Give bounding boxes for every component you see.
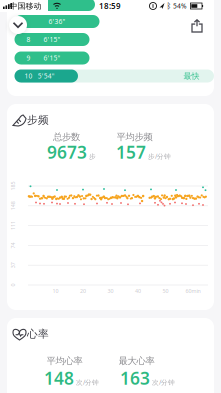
staticText: 54% (173, 2, 187, 10)
staticText: 心率 (27, 327, 49, 340)
staticText: ᛒ (166, 2, 171, 10)
staticText: 9673 (47, 140, 87, 163)
staticText: 74 (10, 242, 16, 249)
staticText: 次/分钟 (76, 378, 99, 387)
staticText: 20 (80, 287, 86, 295)
staticText: 40 (135, 287, 141, 295)
staticText: 148 (44, 366, 74, 389)
staticText: 9 (26, 54, 30, 62)
staticText: 30 (107, 287, 113, 295)
staticText: 148 (8, 202, 17, 209)
staticText: 50 (162, 287, 168, 295)
staticText: 6'15" (43, 54, 60, 62)
button[interactable]: 8 (14, 33, 89, 46)
staticText: 157 (116, 140, 146, 163)
staticText: 5'54" (38, 72, 55, 80)
staticText: 平均步频 (116, 131, 152, 143)
staticText: 最大心率 (118, 355, 154, 367)
staticText: 6'15" (43, 35, 60, 44)
staticText: 60min (185, 287, 200, 295)
staticText: 次/分钟 (152, 378, 175, 387)
staticText: 步 (89, 152, 96, 161)
staticText: 步频 (27, 113, 49, 126)
staticText: 18:59 (99, 1, 121, 11)
staticText: 111 (8, 222, 17, 229)
staticText: 8 (26, 35, 30, 44)
staticText: 最快 (183, 71, 199, 81)
button[interactable]: 9 (14, 51, 89, 64)
staticText: 10 (24, 72, 32, 80)
staticText: 10 (52, 287, 58, 295)
button[interactable] (14, 15, 99, 28)
staticText: 37 (10, 262, 16, 269)
staticText: 163 (120, 366, 150, 389)
staticText: 185 (8, 182, 17, 190)
staticText: 0 (11, 281, 14, 289)
staticText: 平均心率 (46, 355, 82, 367)
button[interactable] (188, 16, 206, 36)
staticText: 步/分钟 (148, 152, 171, 161)
staticText: 总步数 (53, 131, 80, 143)
button[interactable]: 10 (14, 69, 78, 82)
button[interactable] (9, 16, 27, 34)
staticText: 6'36" (48, 17, 65, 26)
staticText: 中国移动 (9, 1, 41, 11)
button[interactable]: 最快 (14, 69, 214, 82)
